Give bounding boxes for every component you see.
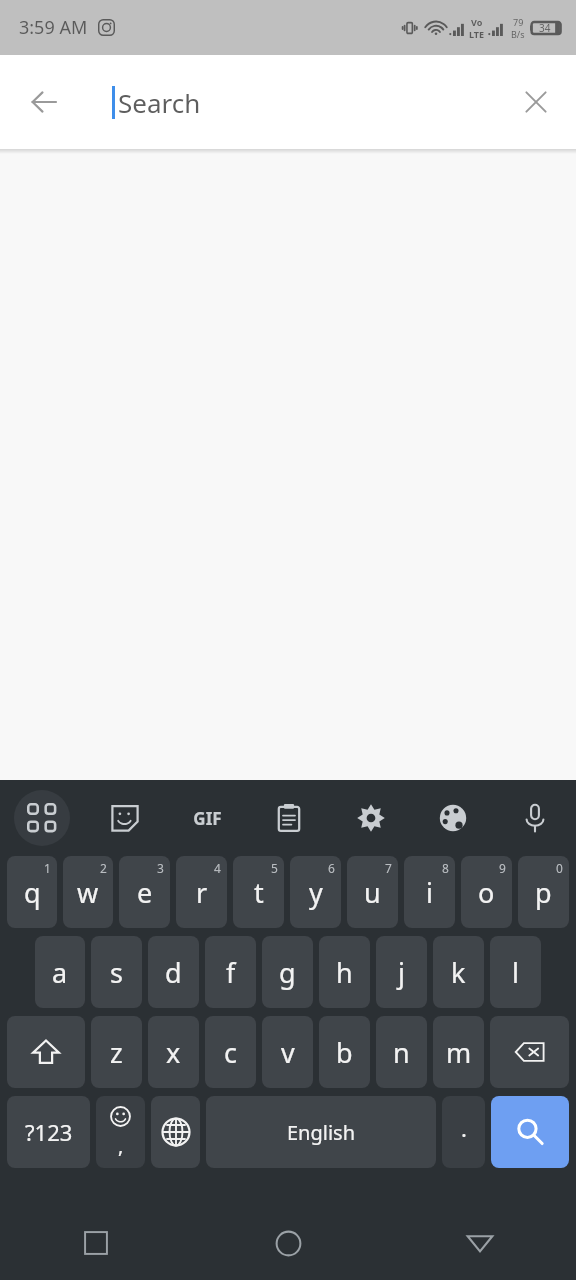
staticText: n bbox=[393, 1034, 410, 1071]
staticText: v bbox=[281, 1034, 295, 1071]
staticText: 3 bbox=[157, 860, 164, 876]
staticText: 7 bbox=[385, 860, 392, 876]
staticText: e bbox=[137, 874, 153, 911]
button[interactable]: h bbox=[319, 936, 370, 1008]
staticText: 1 bbox=[44, 860, 51, 876]
button[interactable]: a bbox=[35, 936, 85, 1008]
button[interactable]: y bbox=[290, 856, 341, 928]
button[interactable]: Emoji and comma bbox=[96, 1096, 145, 1168]
button[interactable]: Clipboard bbox=[248, 780, 330, 856]
staticText: r bbox=[196, 874, 208, 911]
button[interactable]: z bbox=[91, 1016, 142, 1088]
button[interactable]: GIF bbox=[166, 780, 248, 856]
staticText: , bbox=[118, 1132, 124, 1159]
staticText: x bbox=[166, 1034, 181, 1071]
button[interactable]: Search bbox=[112, 69, 496, 135]
staticText: w bbox=[77, 874, 99, 911]
staticText: f bbox=[226, 954, 236, 991]
staticText: c bbox=[224, 1034, 237, 1071]
button[interactable]: Search bbox=[491, 1096, 569, 1168]
button[interactable]: p bbox=[518, 856, 569, 928]
button[interactable]: r bbox=[176, 856, 227, 928]
staticText: p bbox=[535, 874, 552, 911]
staticText: a bbox=[52, 954, 68, 991]
button[interactable]: k bbox=[433, 936, 484, 1008]
button[interactable]: o bbox=[461, 856, 512, 928]
staticText: s bbox=[110, 954, 123, 991]
staticText: 34 bbox=[539, 21, 551, 35]
staticText: z bbox=[110, 1034, 123, 1071]
staticText: 6 bbox=[328, 860, 335, 876]
button[interactable]: b bbox=[319, 1016, 370, 1088]
button[interactable]: Back bbox=[10, 68, 78, 136]
staticText: q bbox=[24, 874, 41, 911]
button[interactable]: Period bbox=[442, 1096, 485, 1168]
staticText: t bbox=[254, 874, 264, 911]
button[interactable]: Clear search bbox=[504, 70, 568, 134]
button[interactable]: Home bbox=[192, 1206, 384, 1280]
button[interactable]: f bbox=[205, 936, 256, 1008]
button[interactable]: i bbox=[404, 856, 455, 928]
button[interactable]: App shortcuts bbox=[0, 780, 83, 856]
staticText: 2 bbox=[100, 860, 107, 876]
staticText: 5 bbox=[271, 860, 278, 876]
staticText: y bbox=[309, 874, 323, 911]
button[interactable]: Backspace bbox=[490, 1016, 569, 1088]
staticText: Search bbox=[118, 85, 201, 120]
button[interactable]: English bbox=[206, 1096, 436, 1168]
staticText: 0 bbox=[556, 860, 563, 876]
button[interactable]: u bbox=[347, 856, 398, 928]
button[interactable]: g bbox=[262, 936, 313, 1008]
staticText: LTE bbox=[469, 28, 485, 40]
button[interactable]: v bbox=[262, 1016, 313, 1088]
button[interactable]: e bbox=[119, 856, 170, 928]
button[interactable]: t bbox=[233, 856, 284, 928]
staticText: 9 bbox=[499, 860, 506, 876]
staticText: u bbox=[364, 874, 381, 911]
button[interactable]: d bbox=[148, 936, 199, 1008]
button[interactable]: j bbox=[376, 936, 427, 1008]
staticText: 3:59 AM bbox=[19, 15, 88, 40]
staticText: B/s bbox=[511, 28, 525, 40]
button[interactable]: n bbox=[376, 1016, 427, 1088]
button[interactable]: Settings bbox=[330, 780, 412, 856]
staticText: b bbox=[336, 1034, 353, 1071]
button[interactable]: Voice input bbox=[494, 780, 576, 856]
button[interactable]: Stickers bbox=[83, 780, 166, 856]
staticText: g bbox=[279, 954, 296, 991]
staticText: . bbox=[461, 1113, 467, 1143]
staticText: English bbox=[287, 1119, 356, 1146]
button[interactable]: Recent apps bbox=[0, 1206, 192, 1280]
button[interactable]: x bbox=[148, 1016, 199, 1088]
staticText: h bbox=[336, 954, 353, 991]
staticText: k bbox=[451, 954, 466, 991]
button[interactable]: m bbox=[433, 1016, 484, 1088]
button[interactable]: s bbox=[91, 936, 142, 1008]
button[interactable]: Themes bbox=[412, 780, 494, 856]
staticText: Vo bbox=[471, 16, 483, 28]
button[interactable]: c bbox=[205, 1016, 256, 1088]
button[interactable]: Switch language bbox=[151, 1096, 200, 1168]
staticText: o bbox=[478, 874, 495, 911]
button[interactable]: ?123 bbox=[7, 1096, 90, 1168]
staticText: m bbox=[446, 1034, 472, 1071]
staticText: l bbox=[512, 954, 519, 991]
staticText: ?123 bbox=[25, 1117, 73, 1147]
staticText: d bbox=[165, 954, 182, 991]
button[interactable]: Back bbox=[384, 1206, 576, 1280]
staticText: j bbox=[398, 954, 405, 991]
staticText: GIF bbox=[193, 807, 222, 830]
staticText: 79 bbox=[513, 16, 524, 28]
button[interactable]: l bbox=[490, 936, 541, 1008]
button[interactable]: w bbox=[63, 856, 113, 928]
staticText: 4 bbox=[214, 860, 221, 876]
staticText: 8 bbox=[442, 860, 449, 876]
staticText: i bbox=[426, 874, 433, 911]
button[interactable]: q bbox=[7, 856, 57, 928]
button[interactable]: Shift bbox=[7, 1016, 85, 1088]
